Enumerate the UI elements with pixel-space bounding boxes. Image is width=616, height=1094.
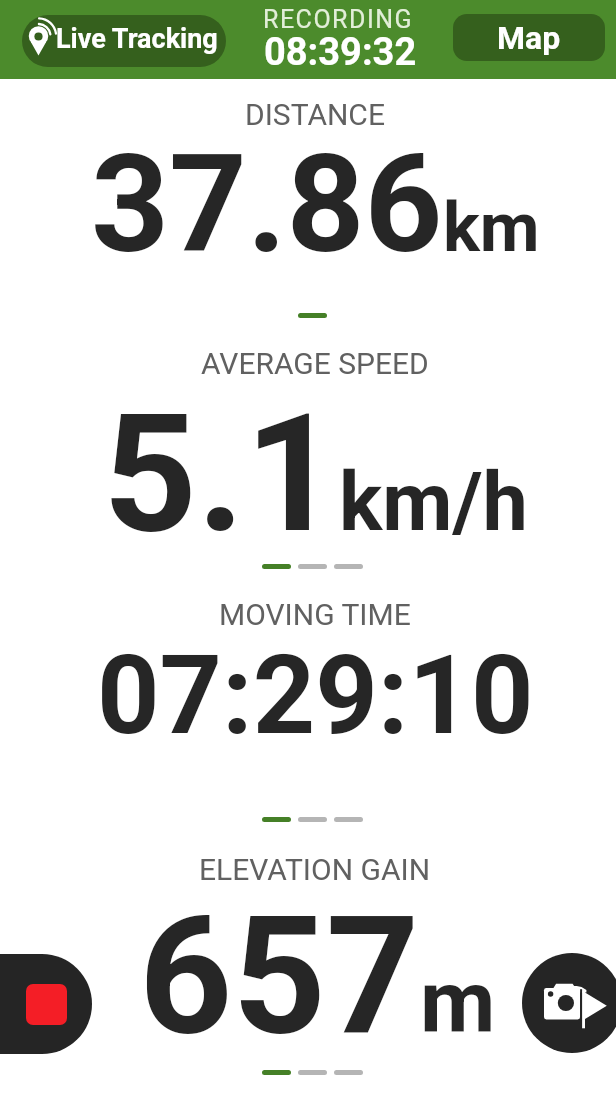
staticText: m bbox=[420, 951, 496, 1053]
staticText: 37.86 bbox=[91, 125, 443, 284]
staticText: 5.1 bbox=[103, 378, 339, 570]
staticText: RECORDING bbox=[263, 5, 414, 34]
button[interactable]: Map bbox=[453, 14, 605, 61]
staticText: km/h bbox=[339, 455, 528, 550]
staticText: Map bbox=[497, 19, 561, 57]
button[interactable]: Take photo bbox=[522, 953, 616, 1053]
staticText: km bbox=[443, 187, 540, 268]
staticText: 657 bbox=[139, 881, 420, 1072]
staticText: 07:29:10 bbox=[97, 632, 534, 760]
staticText: DISTANCE bbox=[245, 97, 385, 132]
button[interactable]: Live Tracking bbox=[22, 15, 226, 67]
staticText: MOVING TIME bbox=[219, 597, 411, 632]
staticText: AVERAGE SPEED bbox=[201, 346, 429, 381]
staticText: 08:39:32 bbox=[264, 30, 417, 75]
staticText: ELEVATION GAIN bbox=[199, 852, 431, 887]
staticText: Live Tracking bbox=[56, 23, 218, 55]
button[interactable]: Stop recording bbox=[0, 954, 92, 1054]
